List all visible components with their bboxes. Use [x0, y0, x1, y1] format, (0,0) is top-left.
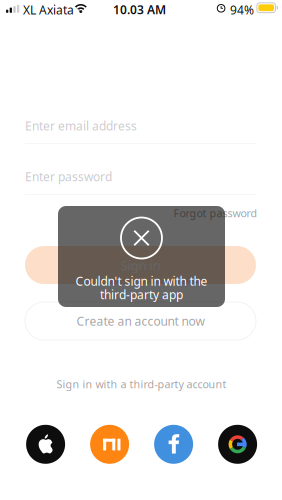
staticText: 94% — [230, 2, 254, 18]
staticText: Enter email address — [25, 118, 137, 134]
staticText: Sign in with a third-party account — [56, 377, 226, 391]
staticText: Sign in — [120, 256, 160, 274]
button[interactable]: Sign in with Google — [218, 425, 257, 464]
button[interactable]: Sign in with Apple — [26, 425, 65, 464]
staticText: XL Axiata — [23, 2, 74, 18]
button[interactable]: Sign in — [25, 246, 256, 284]
staticText: third-party app — [100, 286, 183, 302]
button[interactable]: Forgot password — [172, 205, 258, 220]
staticText: 10.03 AM — [113, 2, 166, 17]
button[interactable]: Sign in with Mi — [90, 425, 129, 464]
staticText: Forgot password — [173, 206, 257, 220]
staticText: Couldn't sign in with the — [75, 273, 207, 289]
button[interactable]: Create an account now — [25, 302, 256, 340]
staticText: Create an account now — [76, 313, 204, 329]
staticText: Enter password — [25, 169, 112, 184]
button[interactable]: Sign in with Facebook — [154, 425, 193, 464]
